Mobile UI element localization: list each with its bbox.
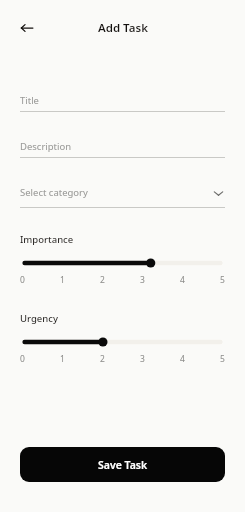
staticText: Save Task: [98, 458, 148, 472]
staticText: 3: [140, 353, 145, 365]
button[interactable]: Description: [20, 138, 225, 158]
staticText: 0: [20, 353, 25, 365]
button[interactable]: Urgency slider: [20, 335, 225, 349]
staticText: 4: [180, 274, 185, 286]
staticText: 3: [140, 274, 145, 286]
staticText: Title: [20, 94, 39, 107]
staticText: Urgency: [20, 312, 58, 325]
staticText: 1: [60, 274, 65, 286]
button[interactable]: Importance slider: [20, 256, 225, 270]
button[interactable]: Title: [20, 92, 225, 112]
button[interactable]: Select category: [20, 184, 225, 208]
button[interactable]: Save Task: [20, 447, 225, 482]
staticText: 0: [20, 274, 25, 286]
staticText: 2: [100, 274, 105, 286]
staticText: Importance: [20, 233, 74, 246]
staticText: 4: [180, 353, 185, 365]
staticText: 5: [220, 274, 225, 286]
button[interactable]: Back: [10, 11, 44, 45]
staticText: Description: [20, 140, 72, 153]
staticText: 5: [220, 353, 225, 365]
staticText: 2: [100, 353, 105, 365]
staticText: Select category: [20, 186, 88, 199]
staticText: 1: [60, 353, 65, 365]
staticText: Add Task: [98, 20, 148, 36]
